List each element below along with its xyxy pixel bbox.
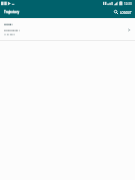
staticText: Flying Route 1	[4, 28, 20, 31]
staticText: 11.01.2010	[4, 34, 15, 37]
staticText: NAME1	[4, 23, 13, 26]
staticText: NAME1	[4, 21, 13, 24]
staticText: 12:30	[124, 2, 132, 6]
staticText: Flying Route 1	[4, 29, 20, 32]
staticText: Trajectory	[4, 9, 20, 13]
button[interactable]: LOGOUT	[117, 7, 134, 18]
staticText: Trajectory	[4, 10, 20, 14]
staticText: 11.01.2010	[4, 33, 15, 36]
staticText: Flying Route 1	[4, 27, 20, 30]
staticText: LOGOUT	[120, 11, 132, 15]
staticText: Trajectory	[4, 11, 20, 15]
staticText: NAME1	[4, 22, 13, 25]
staticText: 11.01.2010	[4, 32, 15, 35]
button[interactable]: Flying Route 1	[0, 26, 135, 40]
button[interactable]: Search	[110, 6, 121, 17]
